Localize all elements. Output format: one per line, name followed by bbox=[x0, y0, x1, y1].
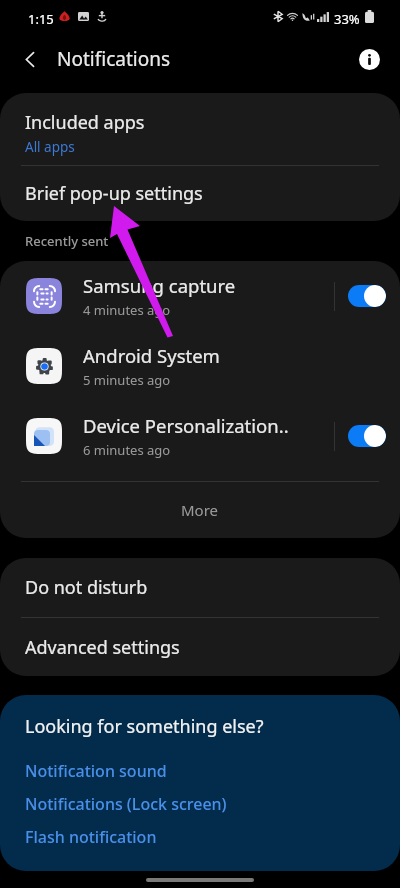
staticText: 33% bbox=[334, 10, 360, 28]
staticText: All apps bbox=[25, 138, 75, 156]
staticText: 4 minutes ago bbox=[83, 301, 171, 319]
button[interactable]: Info bbox=[352, 42, 386, 76]
button[interactable]: Toggle Device Personalization.. bbox=[348, 425, 386, 447]
button[interactable]: Advanced settings bbox=[0, 618, 400, 676]
staticText: 1:15 bbox=[28, 10, 54, 28]
staticText: Samsung capture bbox=[83, 273, 236, 298]
staticText: Notifications bbox=[57, 46, 171, 72]
staticText: More bbox=[181, 500, 219, 520]
button[interactable]: More bbox=[0, 482, 400, 538]
button[interactable]: Device Personalization.. bbox=[0, 401, 400, 471]
button[interactable]: Samsung capture bbox=[0, 261, 400, 331]
staticText: 5 minutes ago bbox=[83, 371, 171, 389]
staticText: Advanced settings bbox=[25, 635, 180, 660]
staticText: Included apps bbox=[25, 110, 145, 135]
button[interactable]: Notification sound bbox=[25, 757, 167, 784]
button[interactable]: Navigate up bbox=[11, 40, 49, 78]
staticText: Notification sound bbox=[25, 760, 167, 782]
staticText: Brief pop-up settings bbox=[25, 181, 203, 206]
button[interactable]: Toggle Samsung capture bbox=[348, 285, 386, 307]
staticText: Do not disturb bbox=[25, 575, 148, 600]
button[interactable]: Included apps bbox=[0, 93, 400, 165]
button[interactable]: Do not disturb bbox=[0, 558, 400, 617]
button[interactable]: Android System bbox=[0, 331, 400, 401]
staticText: Device Personalization.. bbox=[83, 413, 289, 438]
staticText: Looking for something else? bbox=[25, 714, 264, 739]
staticText: Flash notification bbox=[25, 826, 157, 848]
staticText: Recently sent bbox=[25, 232, 109, 250]
staticText: Android System bbox=[83, 343, 220, 368]
staticText: Notifications (Lock screen) bbox=[25, 793, 227, 815]
button[interactable]: Flash notification bbox=[25, 823, 157, 850]
button[interactable]: Notifications (Lock screen) bbox=[25, 790, 227, 817]
staticText: 6 minutes ago bbox=[83, 441, 171, 459]
button[interactable]: Brief pop-up settings bbox=[0, 166, 400, 221]
